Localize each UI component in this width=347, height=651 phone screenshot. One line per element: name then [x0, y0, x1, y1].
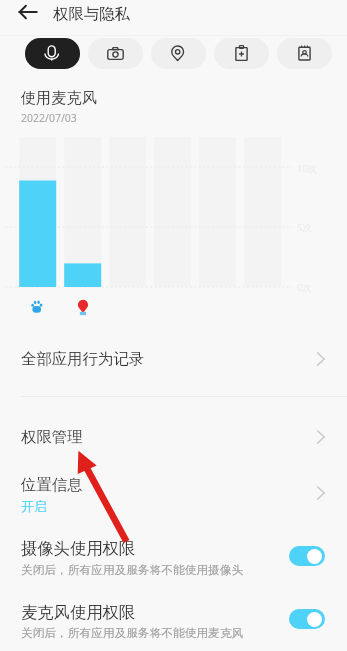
button[interactable]: Contacts	[277, 38, 332, 69]
staticText: 0次	[297, 281, 312, 294]
staticText: 关闭后，所有应用及服务将不能使用麦克风	[21, 626, 244, 641]
staticText: 麦克风使用权限	[21, 602, 136, 623]
button[interactable]: 全部应用行为记录	[0, 329, 347, 373]
staticText: 开启	[21, 499, 47, 515]
button[interactable]: 麦克风使用权限	[0, 595, 347, 647]
staticText: 10次	[297, 162, 318, 175]
staticText: 权限与隐私	[53, 4, 130, 23]
button[interactable]: Camera	[88, 38, 143, 69]
staticText: 2022/07/03	[21, 111, 77, 125]
staticText: 5次	[297, 221, 312, 234]
button[interactable]: Back	[14, 0, 42, 26]
staticText: 使用麦克风	[21, 88, 97, 107]
staticText: 全部应用行为记录	[21, 349, 145, 368]
staticText: 权限管理	[21, 427, 83, 446]
button[interactable]: Toggle 麦克风使用权限	[289, 609, 325, 629]
button[interactable]: Microphone	[25, 38, 80, 69]
staticText: 位置信息	[21, 475, 83, 494]
button[interactable]: Location	[151, 38, 206, 69]
button[interactable]: 位置信息	[0, 467, 347, 517]
staticText: 关闭后，所有应用及服务将不能使用摄像头	[21, 563, 244, 578]
button[interactable]: 权限管理	[0, 407, 347, 451]
button[interactable]: Toggle 摄像头使用权限	[289, 546, 325, 566]
staticText: 摄像头使用权限	[21, 538, 136, 559]
button[interactable]: Clipboard	[214, 38, 269, 69]
button[interactable]: 摄像头使用权限	[0, 531, 347, 583]
